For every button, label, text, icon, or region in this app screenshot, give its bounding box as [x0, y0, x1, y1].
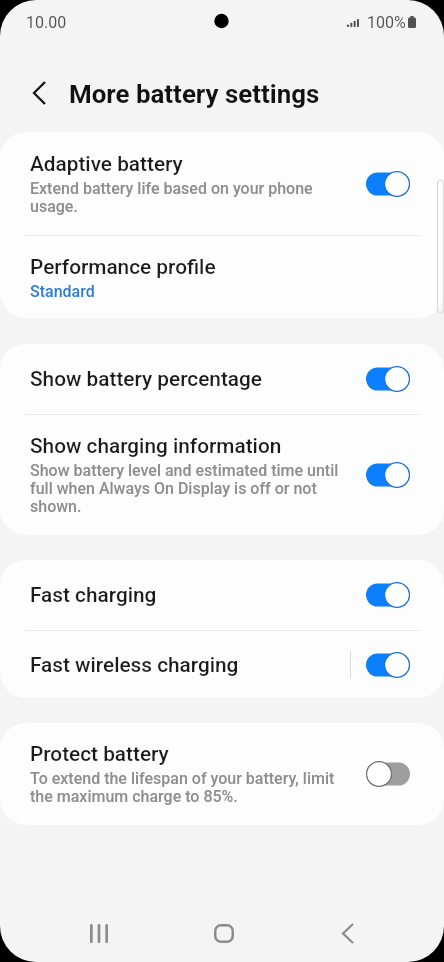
button[interactable]: Recent apps [63, 905, 135, 962]
staticText: 10.00 [26, 13, 67, 32]
button[interactable]: Protect battery [0, 723, 444, 825]
staticText: Fast charging [30, 581, 157, 607]
staticText: Show charging information [30, 432, 282, 458]
staticText: Extend battery life based on your phone … [30, 180, 343, 216]
button[interactable]: Performance profile [0, 236, 444, 318]
button[interactable]: Switch on [366, 171, 410, 197]
button[interactable]: Home [188, 905, 260, 962]
button[interactable]: Show charging information [0, 415, 444, 535]
button[interactable]: Fast charging [0, 560, 444, 630]
button[interactable]: Switch off [366, 761, 410, 787]
staticText: To extend the lifespan of your battery, … [30, 770, 343, 806]
button[interactable]: Switch on [366, 652, 410, 678]
staticText: Performance profile [30, 253, 216, 279]
button[interactable]: Switch on [366, 582, 410, 608]
button[interactable]: Back [312, 905, 384, 962]
staticText: Protect battery [30, 740, 169, 766]
staticText: Show battery level and estimated time un… [30, 462, 343, 516]
staticText: 100% [367, 13, 406, 32]
staticText: Show battery percentage [30, 365, 262, 391]
button[interactable]: Navigate up [21, 75, 57, 111]
button[interactable]: Fast wireless charging [0, 631, 444, 698]
button[interactable]: Show battery percentage [0, 344, 444, 414]
button[interactable]: Adaptive battery [0, 132, 444, 235]
staticText: Fast wireless charging [30, 651, 239, 677]
staticText: Standard [30, 283, 95, 301]
staticText: More battery settings [69, 79, 320, 109]
staticText: Adaptive battery [30, 150, 183, 176]
button[interactable]: Switch on [366, 462, 410, 488]
button[interactable]: Switch on [366, 366, 410, 392]
